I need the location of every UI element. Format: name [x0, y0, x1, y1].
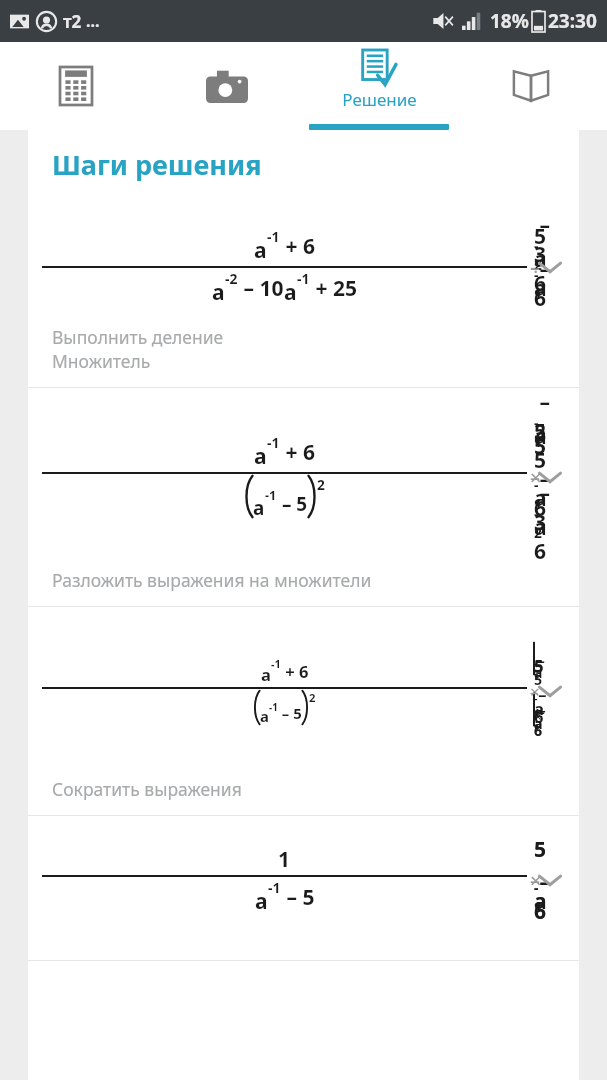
staticText: a — [254, 236, 267, 265]
staticText: -1 — [267, 433, 280, 452]
button[interactable]: Развернуть шаг — [527, 454, 573, 500]
staticText: -1 — [297, 269, 310, 288]
staticText: 2 — [309, 690, 316, 705]
staticText: 2 — [317, 475, 325, 494]
button[interactable]: a — [28, 388, 579, 607]
staticText: т2 — [63, 10, 82, 33]
staticText: – 5 — [278, 703, 302, 723]
button[interactable]: Учебник — [455, 42, 607, 130]
button[interactable]: Решение — [303, 42, 455, 130]
staticText: -2 — [225, 269, 238, 288]
button[interactable]: Развернуть шаг — [527, 244, 573, 290]
button[interactable]: Развернуть шаг — [527, 668, 573, 714]
staticText: ... — [86, 10, 100, 32]
staticText: a — [253, 495, 265, 521]
staticText: + 6 — [281, 660, 309, 683]
button[interactable]: a — [28, 607, 579, 816]
staticText: + 6 — [280, 438, 315, 467]
staticText: + 6 — [280, 232, 315, 261]
staticText: a — [260, 706, 269, 726]
staticText: Решение — [342, 88, 417, 111]
staticText: Множитель — [52, 349, 151, 373]
staticText: a — [261, 663, 271, 686]
staticText: – 5 — [281, 883, 315, 912]
staticText: -1 — [267, 227, 280, 246]
staticText: 18% — [490, 8, 529, 34]
staticText: a — [284, 278, 297, 307]
staticText: -1 — [268, 878, 281, 897]
staticText: a — [212, 278, 225, 307]
staticText: Разложить выражения на множители — [52, 568, 372, 592]
button[interactable]: Развернуть шаг — [527, 857, 573, 903]
staticText: -1 — [271, 656, 281, 671]
staticText: 1 — [278, 845, 291, 874]
staticText: -1 — [265, 487, 277, 504]
staticText: Сократить выражения — [52, 777, 242, 801]
staticText: – 5 — [277, 491, 308, 517]
staticText: a — [254, 442, 267, 471]
button[interactable]: Камера — [151, 42, 303, 130]
staticText: – 10 — [238, 274, 284, 303]
staticText: -1 — [269, 700, 278, 713]
button[interactable]: a — [28, 211, 579, 388]
staticText: Шаги решения — [52, 146, 262, 183]
staticText: a — [255, 887, 268, 916]
staticText: Выполнить деление — [52, 325, 224, 349]
button[interactable]: Калькулятор — [0, 42, 151, 130]
staticText: 23:30 — [548, 8, 597, 34]
button[interactable]: 1 — [28, 816, 579, 961]
staticText: + 25 — [310, 274, 357, 303]
